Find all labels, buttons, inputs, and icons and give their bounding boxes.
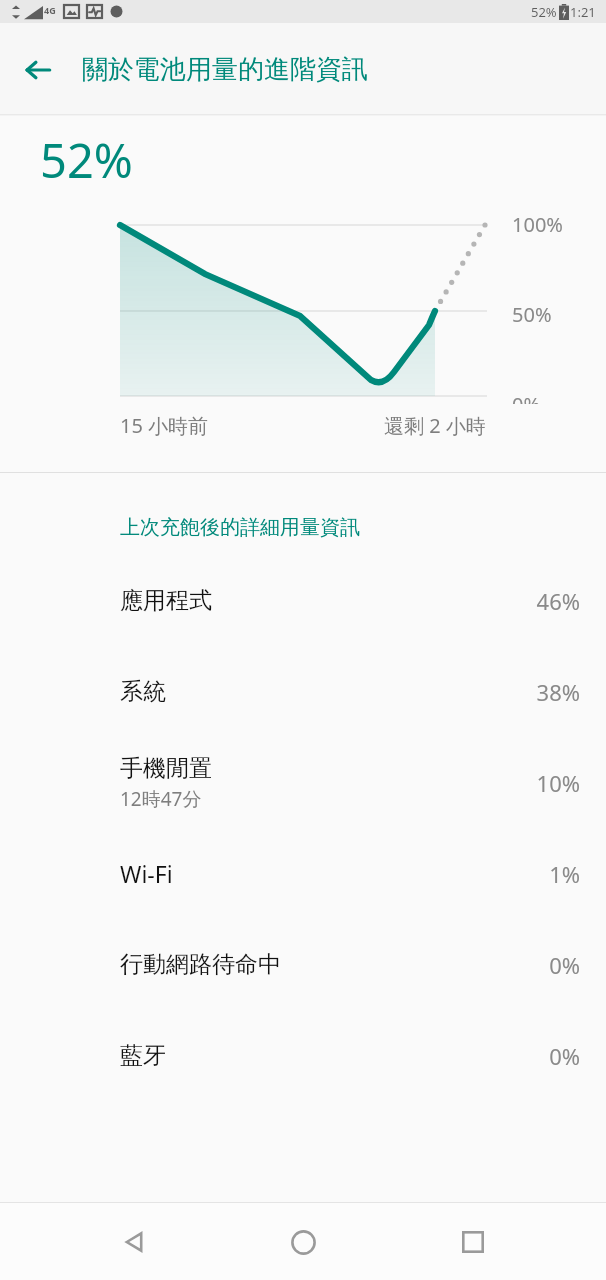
staticText: 還剩 2 小時 <box>384 412 486 439</box>
staticText: 1:21 <box>570 3 596 21</box>
staticText: Wi-Fi <box>120 858 173 889</box>
staticText: 上次充飽後的詳細用量資訊 <box>120 515 360 540</box>
staticText: 52% <box>40 128 133 192</box>
staticText: 0% <box>549 1041 580 1071</box>
staticText: 關於電池用量的進階資訊 <box>82 53 368 86</box>
staticText: 100% <box>512 211 563 238</box>
staticText: 0% <box>549 950 580 980</box>
staticText: 系統 <box>120 677 166 706</box>
button[interactable]: Back <box>10 42 66 98</box>
button[interactable]: Home <box>267 1206 339 1278</box>
button[interactable]: 系統 <box>0 646 606 737</box>
button[interactable]: 行動網路待命中 <box>0 919 606 1010</box>
staticText: 藍牙 <box>120 1041 166 1070</box>
staticText: 1% <box>549 859 580 889</box>
button[interactable]: Recent apps <box>437 1206 509 1278</box>
staticText: 15 小時前 <box>120 412 209 439</box>
button[interactable]: Wi-Fi <box>0 828 606 919</box>
staticText: 50% <box>512 301 552 328</box>
button[interactable]: 應用程式 <box>0 555 606 646</box>
button[interactable]: 手機閒置 <box>0 737 606 828</box>
staticText: 行動網路待命中 <box>120 950 281 979</box>
staticText: 10% <box>536 768 580 798</box>
button[interactable]: 藍牙 <box>0 1010 606 1101</box>
staticText: 0% <box>512 391 541 404</box>
staticText: 4G <box>44 4 56 16</box>
button[interactable]: Back <box>98 1206 170 1278</box>
staticText: 應用程式 <box>120 586 212 615</box>
staticText: 38% <box>536 677 580 707</box>
staticText: 12時47分 <box>120 786 202 812</box>
staticText: 46% <box>536 586 580 616</box>
staticText: 52% <box>531 3 557 21</box>
staticText: 手機閒置 <box>120 754 212 783</box>
